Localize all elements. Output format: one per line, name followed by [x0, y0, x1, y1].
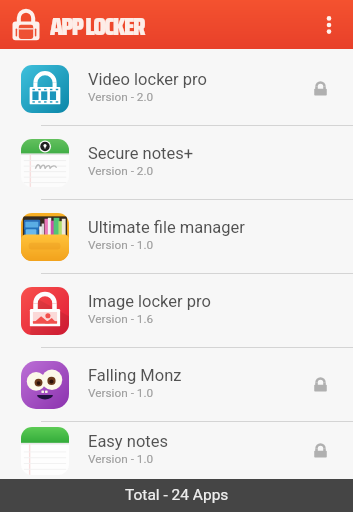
button[interactable]: Easy notes [0, 422, 353, 479]
staticText: APP LOCKER [50, 7, 144, 46]
button[interactable]: Locked [303, 72, 337, 106]
staticText: Version - 2.0 [88, 90, 154, 104]
button[interactable]: Falling Monz [0, 348, 353, 422]
button[interactable]: Locked [303, 434, 337, 468]
button[interactable]: Locked [303, 368, 337, 402]
staticText: Version - 1.6 [88, 312, 154, 326]
button[interactable]: Ultimate file manager [0, 200, 353, 274]
staticText: Total - 24 Apps [125, 486, 229, 504]
staticText: Image locker pro [88, 292, 211, 311]
staticText: Secure notes+ [88, 144, 194, 163]
button[interactable]: Image locker pro [0, 274, 353, 348]
button[interactable]: Video locker pro [0, 52, 353, 126]
button[interactable]: Secure notes+ [0, 126, 353, 200]
staticText: Falling Monz [88, 366, 182, 385]
staticText: Version - 2.0 [88, 164, 154, 178]
staticText: Ultimate file manager [88, 218, 245, 237]
button[interactable]: More options [307, 3, 351, 47]
staticText: Video locker pro [88, 70, 207, 89]
staticText: Version - 1.0 [88, 452, 154, 466]
staticText: Version - 1.0 [88, 386, 154, 400]
staticText: Easy notes [88, 432, 168, 451]
staticText: Version - 1.0 [88, 238, 154, 252]
